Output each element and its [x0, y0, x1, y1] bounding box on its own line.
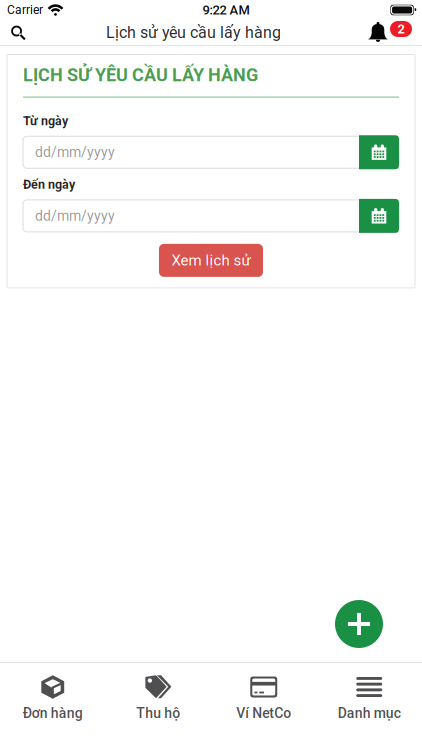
- staticText: Thu hộ: [136, 705, 180, 721]
- staticText: Danh mục: [338, 705, 401, 721]
- staticText: Ví NetCo: [236, 705, 291, 721]
- button[interactable]: Search: [0, 20, 36, 45]
- staticText: 9:22 AM: [202, 2, 249, 18]
- staticText: dd/mm/yyyy: [35, 208, 115, 224]
- button[interactable]: Danh mục: [316, 663, 422, 750]
- button[interactable]: Choose date: [359, 135, 399, 169]
- button[interactable]: Add: [335, 600, 383, 648]
- staticText: Carrier: [7, 3, 43, 17]
- staticText: Đến ngày: [23, 177, 75, 192]
- staticText: dd/mm/yyyy: [35, 144, 115, 160]
- staticText: LỊCH SỬ YÊU CẦU LẤY HÀNG: [23, 64, 258, 86]
- button[interactable]: Notifications, 2 unread: [362, 20, 422, 45]
- staticText: Từ ngày: [23, 114, 68, 128]
- button[interactable]: Ví NetCo: [211, 663, 316, 750]
- button[interactable]: Xem lịch sử: [159, 244, 263, 277]
- staticText: Xem lịch sử: [171, 252, 250, 269]
- staticText: Lịch sử yêu cầu lấy hàng: [106, 23, 281, 42]
- button[interactable]: Đơn hàng: [0, 663, 105, 750]
- staticText: 2: [397, 21, 404, 37]
- staticText: Đơn hàng: [23, 705, 83, 721]
- button[interactable]: Choose date: [359, 199, 399, 233]
- button[interactable]: Thu hộ: [105, 663, 211, 750]
